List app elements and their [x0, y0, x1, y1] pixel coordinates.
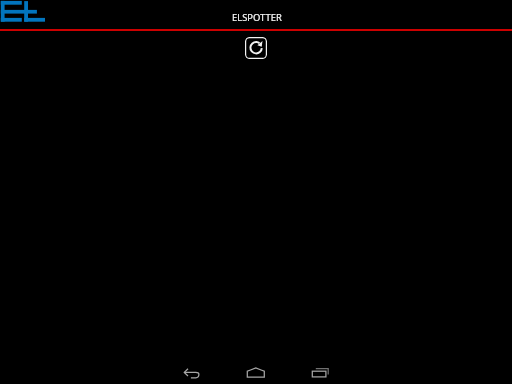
staticText: ELSPOTTER — [232, 11, 282, 24]
button[interactable]: Home — [240, 361, 272, 384]
button[interactable]: Recent apps — [304, 357, 336, 381]
button[interactable]: Refresh — [245, 37, 267, 59]
button[interactable]: Back — [176, 362, 208, 384]
